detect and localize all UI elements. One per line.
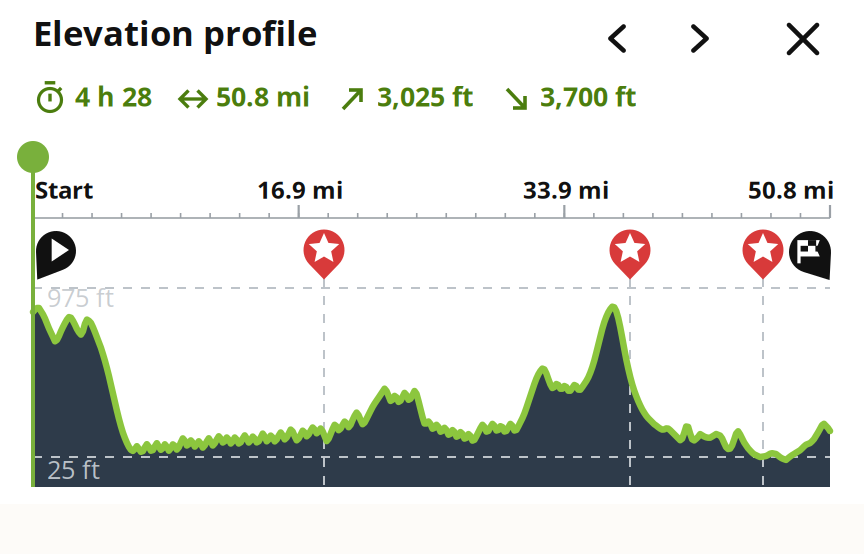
staticText: 3,700 ft <box>540 78 637 114</box>
staticText: 25 ft <box>47 452 100 486</box>
staticText: 50.8 mi <box>748 173 834 206</box>
staticText: 3,025 ft <box>377 78 474 114</box>
staticText: 975 ft <box>47 280 114 314</box>
staticText: 33.9 mi <box>523 173 609 206</box>
staticText: Elevation profile <box>33 9 317 56</box>
staticText: 4 h 28 <box>75 78 152 114</box>
staticText: Start <box>35 173 93 206</box>
staticText: 16.9 mi <box>257 173 343 206</box>
staticText: 50.8 mi <box>216 78 310 114</box>
button[interactable]: Next <box>0 0 864 554</box>
button[interactable]: Previous <box>0 0 864 554</box>
button[interactable]: Close <box>0 0 864 554</box>
